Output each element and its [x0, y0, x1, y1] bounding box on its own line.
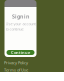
button[interactable]: Continue	[6, 50, 34, 55]
staticText: Sign in	[12, 13, 29, 20]
staticText: Continue	[11, 50, 30, 55]
staticText: Use your account to continue	[5, 21, 35, 32]
staticText: Privacy Policy	[4, 60, 28, 65]
staticText: Terms of Use	[4, 67, 28, 73]
